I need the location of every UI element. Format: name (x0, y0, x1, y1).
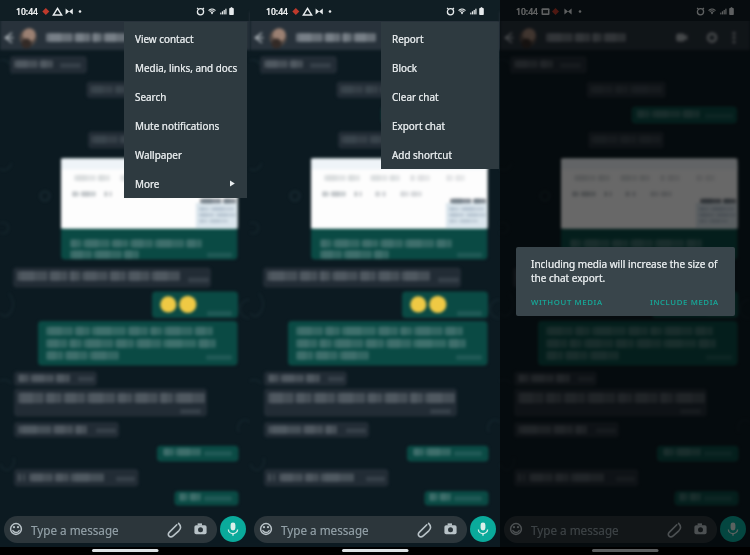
button[interactable]: Record voice message (470, 516, 496, 542)
button[interactable]: Emoji (258, 521, 274, 537)
staticText: Export chat (392, 119, 446, 132)
staticText: Clear chat (392, 90, 439, 103)
button[interactable]: Record voice message (220, 516, 246, 542)
button[interactable]: Voice call (699, 23, 725, 49)
staticText: Mute notifications (135, 119, 220, 132)
button[interactable]: Video call (418, 23, 444, 49)
button[interactable]: Video call (168, 23, 194, 49)
staticText: More (135, 177, 160, 190)
button[interactable]: Search (124, 82, 247, 111)
button[interactable]: Mute notifications (124, 111, 247, 140)
staticText: Including media will increase the size o… (531, 257, 718, 285)
button[interactable]: Attach (666, 521, 683, 538)
button[interactable]: Attach (416, 521, 433, 538)
button[interactable]: Camera (442, 521, 459, 538)
staticText: Wallpaper (135, 148, 183, 161)
button[interactable] (272, 23, 382, 49)
button[interactable]: More options (723, 23, 747, 49)
staticText: Block (392, 61, 417, 74)
button[interactable]: Type a message (504, 516, 717, 543)
button[interactable]: Attach (166, 521, 183, 538)
button[interactable]: Media, links, and docs (124, 53, 247, 82)
button[interactable]: Type a message (254, 516, 467, 543)
button[interactable]: More (124, 169, 247, 198)
staticText: View contact (135, 32, 194, 45)
button[interactable]: Export chat (381, 111, 499, 140)
button[interactable]: Back (500, 23, 522, 49)
staticText: Type a message (31, 522, 119, 538)
staticText: Type a message (531, 522, 619, 538)
button[interactable]: Wallpaper (124, 140, 247, 169)
button[interactable] (22, 23, 132, 49)
staticText: Search (135, 90, 167, 103)
button[interactable] (522, 23, 632, 49)
button[interactable]: Clear chat (381, 82, 499, 111)
button[interactable]: Type a message (4, 516, 217, 543)
button[interactable]: Report (381, 24, 499, 53)
button[interactable]: View contact (124, 24, 247, 53)
button[interactable]: Emoji (8, 521, 24, 537)
button[interactable]: Back (250, 23, 272, 49)
button[interactable]: INCLUDE MEDIA (644, 294, 726, 311)
staticText: Report (392, 32, 424, 45)
button[interactable]: Record voice message (720, 516, 746, 542)
button[interactable]: Camera (192, 521, 209, 538)
button[interactable]: Back (0, 23, 22, 49)
button[interactable]: Emoji (508, 521, 524, 537)
button[interactable]: Video call (668, 23, 694, 49)
staticText: 10:44 (266, 6, 289, 18)
button[interactable]: Camera (692, 521, 709, 538)
staticText: 10:44 (16, 6, 39, 18)
staticText: Type a message (281, 522, 369, 538)
button[interactable]: WITHOUT MEDIA (526, 294, 608, 311)
staticText: INCLUDE MEDIA (650, 297, 719, 308)
staticText: Media, links, and docs (135, 61, 238, 74)
staticText: WITHOUT MEDIA (531, 297, 603, 308)
staticText: Add shortcut (392, 148, 452, 161)
staticText: 10:44 (516, 6, 539, 18)
button[interactable]: Add shortcut (381, 140, 499, 169)
button[interactable]: Block (381, 53, 499, 82)
